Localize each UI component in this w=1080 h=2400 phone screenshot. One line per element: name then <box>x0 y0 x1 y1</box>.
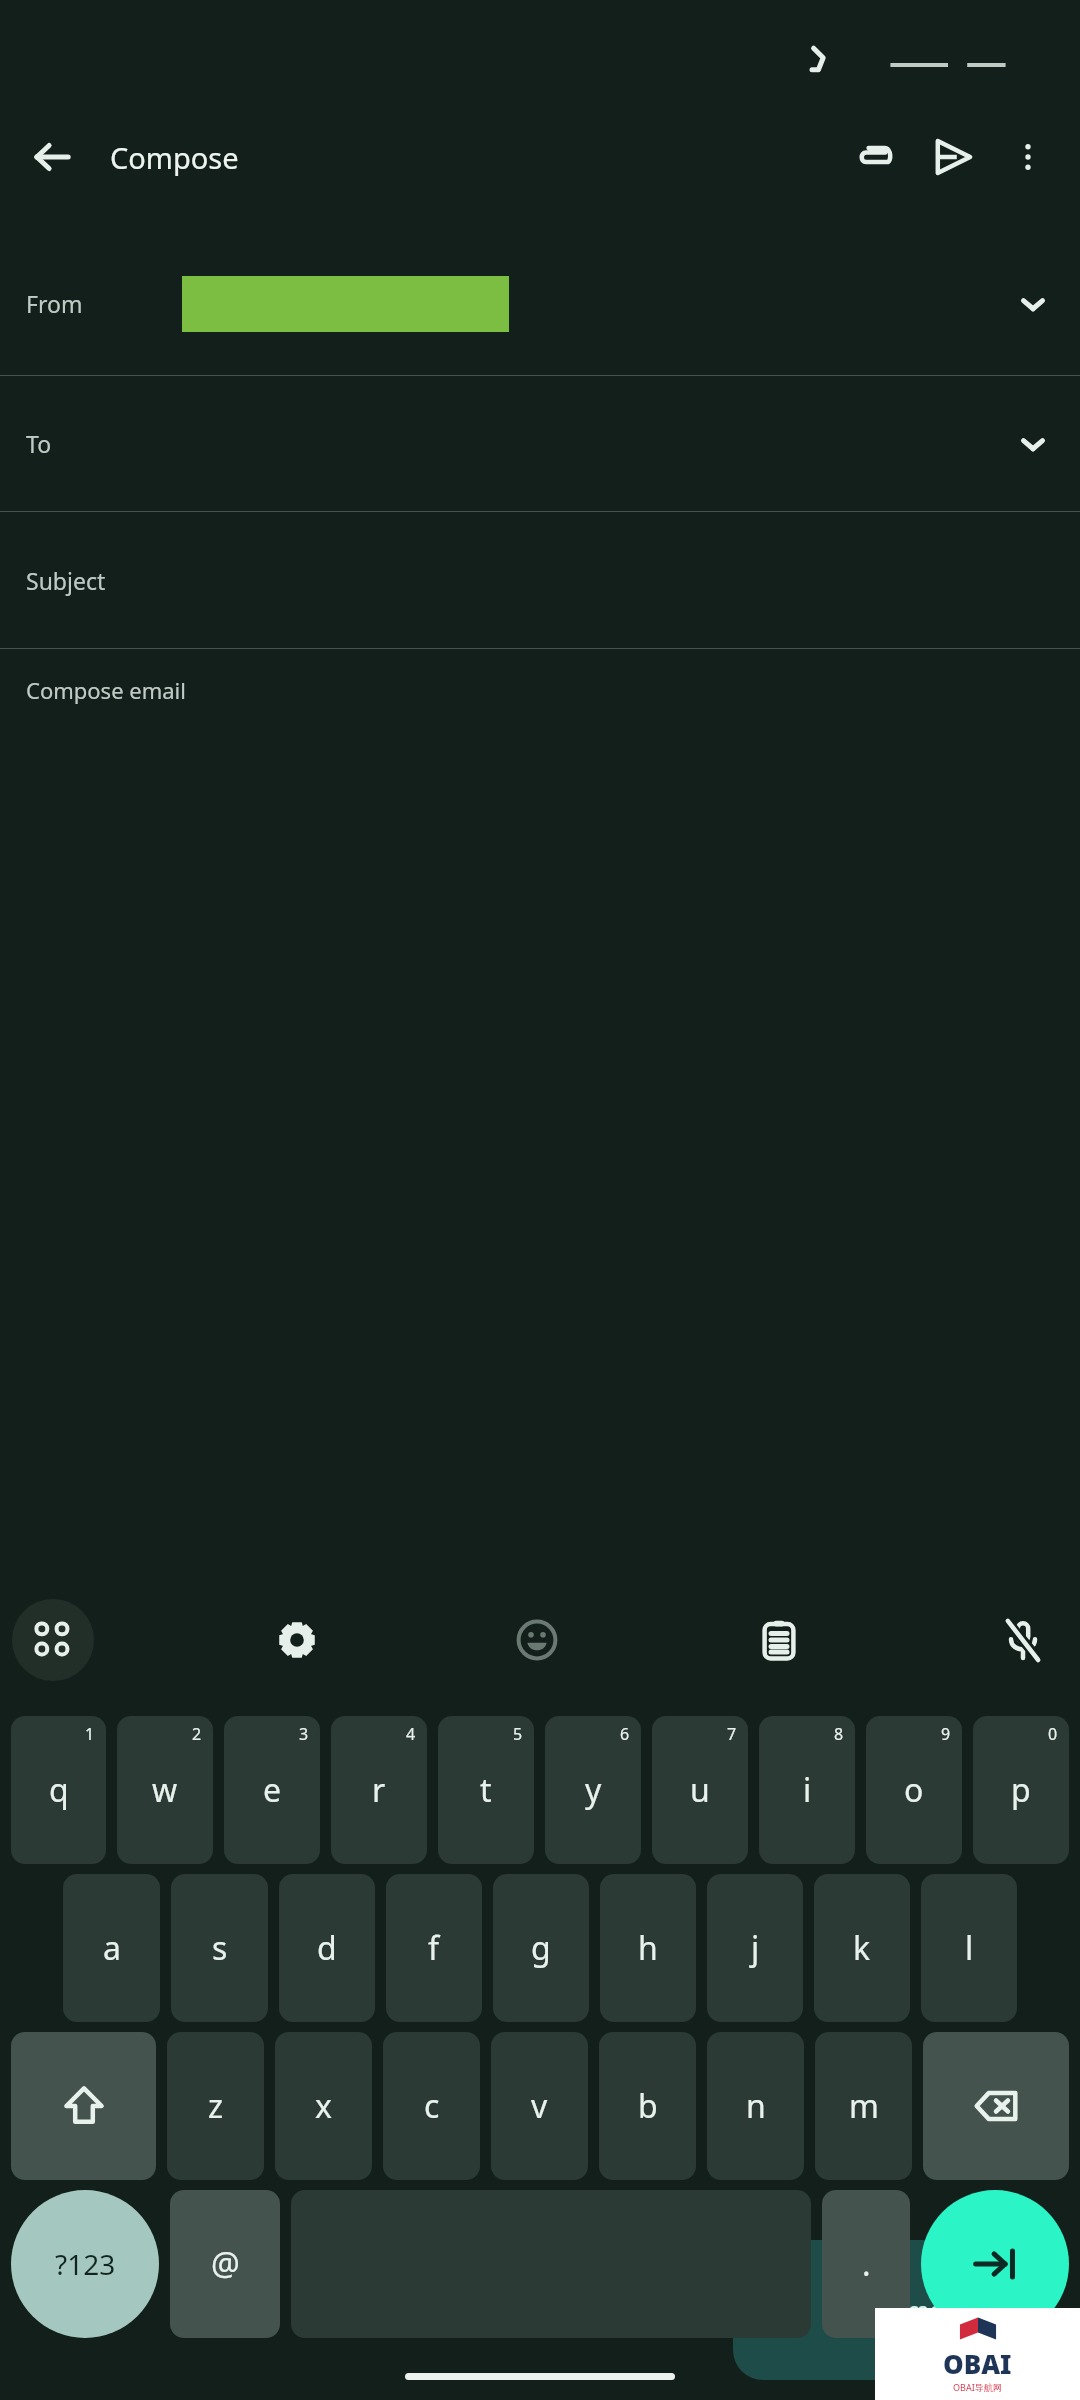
button[interactable]: o <box>866 1716 962 1864</box>
button[interactable]: t <box>438 1716 534 1864</box>
staticText: s <box>212 1926 228 1970</box>
staticText: v <box>531 2084 548 2128</box>
button[interactable]: Enter <box>921 2190 1069 2338</box>
button[interactable]: ?123 <box>11 2190 159 2338</box>
staticText: From <box>26 288 83 319</box>
button[interactable]: @ <box>170 2190 280 2338</box>
staticText: 5 <box>513 1723 523 1745</box>
staticText: 7 <box>727 1723 737 1745</box>
staticText: @ <box>211 2242 240 2286</box>
button[interactable]: z <box>167 2032 264 2180</box>
button[interactable]: m <box>815 2032 912 2180</box>
button[interactable]: From <box>0 232 1080 375</box>
button[interactable]: x <box>275 2032 372 2180</box>
staticText: f <box>428 1926 440 1970</box>
button[interactable]: Attach file <box>836 118 914 196</box>
button[interactable]: h <box>600 1874 696 2022</box>
button[interactable]: n <box>707 2032 804 2180</box>
button[interactable]: More options <box>992 121 1064 193</box>
button[interactable]: y <box>545 1716 641 1864</box>
staticText: To <box>26 428 52 459</box>
button[interactable]: l <box>921 1874 1017 2022</box>
staticText: x <box>315 2084 332 2128</box>
button[interactable]: Toolbar <box>12 1599 94 1681</box>
button[interactable]: a <box>63 1874 160 2022</box>
staticText: 9 <box>941 1723 951 1745</box>
button[interactable]: u <box>652 1716 748 1864</box>
button[interactable]: Emoji <box>498 1601 576 1679</box>
button[interactable]: k <box>814 1874 910 2022</box>
staticText: Compose email <box>26 675 186 705</box>
staticText: m <box>849 2084 879 2128</box>
staticText: g <box>531 1926 551 1970</box>
staticText: k <box>853 1926 871 1970</box>
staticText: Help me write <box>845 2293 1010 2327</box>
button[interactable]: c <box>383 2032 480 2180</box>
staticText: 6 <box>620 1723 630 1745</box>
staticText: q <box>49 1768 69 1812</box>
staticText: w <box>152 1768 178 1812</box>
button[interactable]: v <box>491 2032 588 2180</box>
staticText: z <box>208 2084 224 2128</box>
staticText: a <box>103 1926 121 1970</box>
button[interactable]: b <box>599 2032 696 2180</box>
staticText: h <box>638 1926 658 1970</box>
staticText: j <box>751 1926 760 1970</box>
button[interactable]: Back <box>16 121 88 193</box>
staticText: o <box>904 1768 924 1812</box>
staticText: u <box>690 1768 710 1812</box>
button[interactable]: e <box>224 1716 320 1864</box>
button[interactable]: w <box>117 1716 213 1864</box>
button[interactable]: Send <box>914 118 992 196</box>
staticText: e <box>263 1768 282 1812</box>
staticText: 4 <box>406 1723 416 1745</box>
staticText: b <box>638 2084 658 2128</box>
staticText: p <box>1011 1768 1031 1812</box>
staticText: Compose <box>110 138 239 177</box>
button[interactable]: Clipboard <box>740 1601 818 1679</box>
staticText: 8 <box>834 1723 844 1745</box>
staticText: 2 <box>192 1723 202 1745</box>
staticText: 3 <box>299 1723 309 1745</box>
staticText: . <box>862 2242 871 2286</box>
button[interactable]: . <box>822 2190 910 2338</box>
button[interactable]: To <box>0 376 1080 511</box>
staticText: 0 <box>1048 1723 1058 1745</box>
staticText: ?123 <box>55 2245 116 2283</box>
button[interactable]: s <box>171 1874 268 2022</box>
staticText: l <box>965 1926 974 1970</box>
button[interactable]: i <box>759 1716 855 1864</box>
staticText: i <box>803 1768 812 1812</box>
staticText: y <box>585 1768 602 1812</box>
button[interactable]: Help me write <box>733 2240 1044 2380</box>
staticText: n <box>746 2084 766 2128</box>
button[interactable]: Microphone off <box>984 1601 1062 1679</box>
staticText: d <box>317 1926 337 1970</box>
staticText: t <box>480 1768 492 1812</box>
button[interactable]: g <box>493 1874 589 2022</box>
button[interactable]: Shift <box>11 2032 156 2180</box>
staticText: 1 <box>85 1723 95 1745</box>
button[interactable]: Settings <box>258 1601 336 1679</box>
button[interactable]: Subject <box>0 512 1080 648</box>
staticText: OBAI导航网 <box>953 2381 1002 2393</box>
staticText: OBAI <box>943 2346 1012 2381</box>
staticText: c <box>424 2084 440 2128</box>
button[interactable]: d <box>279 1874 375 2022</box>
button[interactable]: p <box>973 1716 1069 1864</box>
button[interactable]: j <box>707 1874 803 2022</box>
button[interactable]: q <box>11 1716 106 1864</box>
button[interactable]: Backspace <box>923 2032 1069 2180</box>
staticText: Subject <box>26 565 106 596</box>
staticText: r <box>372 1768 386 1812</box>
button[interactable]: f <box>386 1874 482 2022</box>
button[interactable]: r <box>331 1716 427 1864</box>
